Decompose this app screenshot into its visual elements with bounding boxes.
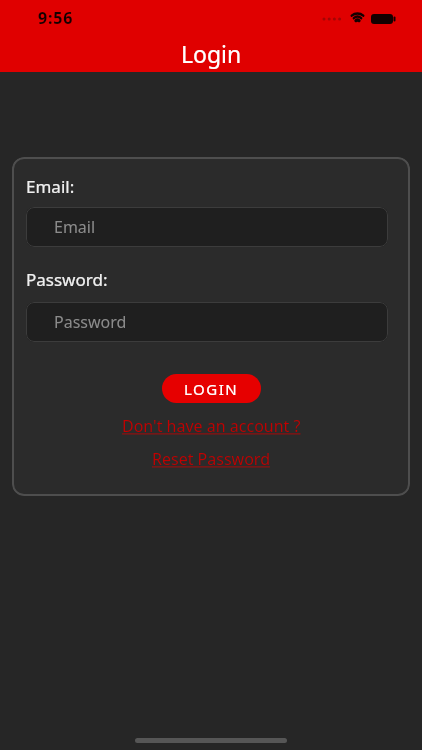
staticText: Email:: [26, 175, 75, 198]
button[interactable]: Email: [26, 207, 388, 247]
staticText: Password:: [26, 268, 108, 291]
staticText: Login: [181, 38, 242, 69]
button[interactable]: LOGIN: [162, 374, 261, 403]
button[interactable]: Don't have an account ?: [122, 415, 301, 437]
staticText: 9:56: [38, 7, 74, 29]
button[interactable]: Password: [26, 302, 388, 342]
staticText: Password: [54, 311, 127, 333]
staticText: LOGIN: [184, 379, 239, 399]
staticText: Email: [54, 216, 96, 238]
button[interactable]: Reset Password: [152, 448, 270, 470]
